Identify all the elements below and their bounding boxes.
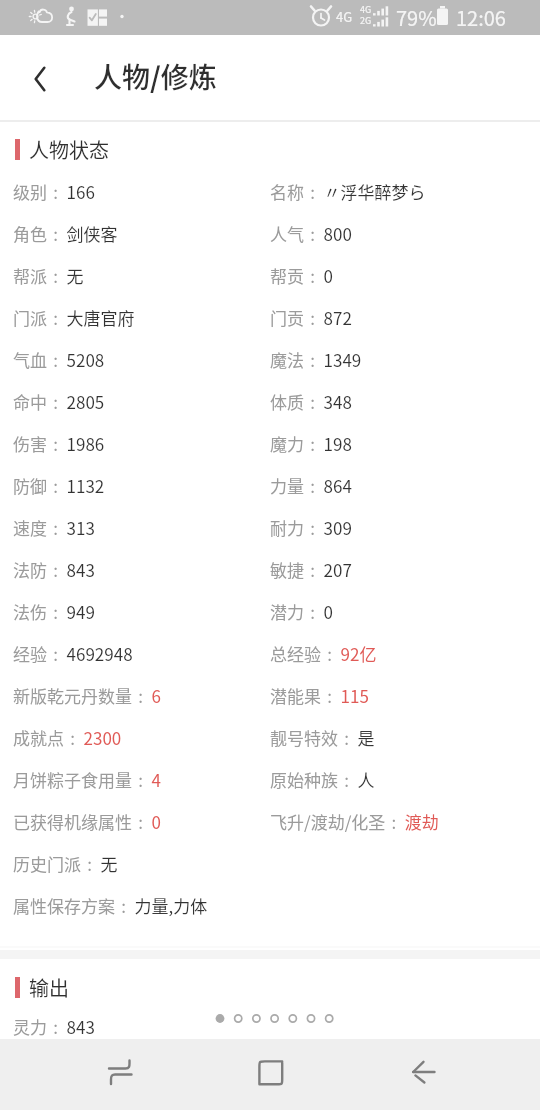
staticText: 属性保存方案 : 力量,力体 bbox=[13, 893, 208, 918]
staticText: 法防 : 843 bbox=[13, 557, 95, 582]
staticText: 人气 : 800 bbox=[270, 221, 352, 246]
staticText: 人物/修炼 bbox=[94, 56, 217, 97]
staticText: 名称 : 〃浮华醉梦ら bbox=[270, 179, 426, 204]
staticText: 总经验 : 92亿 bbox=[270, 641, 377, 666]
staticText: 速度 : 313 bbox=[13, 515, 95, 540]
staticText: 门贡 : 872 bbox=[270, 305, 352, 330]
staticText: 4G bbox=[360, 3, 372, 16]
staticText: 魔法 : 1349 bbox=[270, 347, 362, 372]
staticText: 历史门派 : 无 bbox=[13, 851, 118, 876]
staticText: 帮派 : 无 bbox=[13, 263, 84, 288]
staticText: 输出 bbox=[29, 973, 69, 1002]
staticText: 门派 : 大唐官府 bbox=[13, 305, 135, 330]
staticText: 法伤 : 949 bbox=[13, 599, 95, 624]
staticText: 潜能果 : 115 bbox=[270, 683, 369, 708]
staticText: 角色 : 剑侠客 bbox=[13, 221, 118, 246]
staticText: 靓号特效 : 是 bbox=[270, 725, 375, 750]
staticText: 力量 : 864 bbox=[270, 473, 352, 498]
staticText: 命中 : 2805 bbox=[13, 389, 105, 414]
staticText: 人物状态 bbox=[29, 135, 109, 164]
staticText: 月饼粽子食用量 : 4 bbox=[13, 767, 161, 792]
staticText: 飞升/渡劫/化圣 : 渡劫 bbox=[270, 809, 439, 834]
button[interactable]: 输出 bbox=[0, 973, 540, 1007]
staticText: 原始种族 : 人 bbox=[270, 767, 375, 792]
staticText: 经验 : 4692948 bbox=[13, 641, 133, 666]
button[interactable]: 人物状态 bbox=[0, 135, 540, 169]
staticText: 魔力 : 198 bbox=[270, 431, 352, 456]
staticText: 帮贡 : 0 bbox=[270, 263, 333, 288]
button[interactable]: Recent apps bbox=[76, 1039, 166, 1110]
staticText: 气血 : 5208 bbox=[13, 347, 105, 372]
button[interactable]: Page indicator bbox=[204, 1003, 346, 1033]
button[interactable]: Back bbox=[16, 55, 64, 103]
staticText: 79% bbox=[396, 3, 437, 32]
staticText: 潜力 : 0 bbox=[270, 599, 333, 624]
staticText: 12:06 bbox=[456, 3, 506, 32]
staticText: 耐力 : 309 bbox=[270, 515, 352, 540]
staticText: 体质 : 348 bbox=[270, 389, 352, 414]
button[interactable]: Back bbox=[379, 1039, 469, 1110]
staticText: 级别 : 166 bbox=[13, 179, 95, 204]
staticText: 4G bbox=[336, 7, 353, 26]
staticText: 新版乾元丹数量 : 6 bbox=[13, 683, 161, 708]
staticText: 灵力 : 843 bbox=[13, 1014, 95, 1039]
staticText: 成就点 : 2300 bbox=[13, 725, 122, 750]
button[interactable]: Home bbox=[226, 1039, 316, 1110]
staticText: 敏捷 : 207 bbox=[270, 557, 352, 582]
staticText: 防御 : 1132 bbox=[13, 473, 105, 498]
staticText: 已获得机缘属性 : 0 bbox=[13, 809, 161, 834]
staticText: 2G bbox=[360, 14, 372, 27]
staticText: 伤害 : 1986 bbox=[13, 431, 105, 456]
